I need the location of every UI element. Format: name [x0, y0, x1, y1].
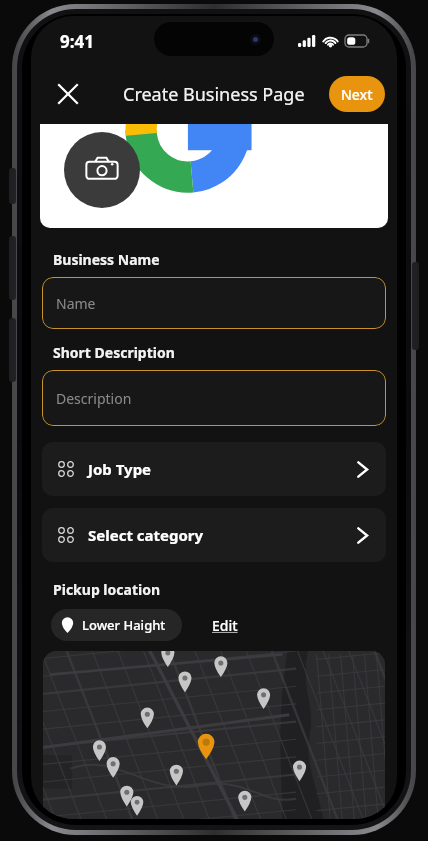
staticText: Business Name: [53, 250, 160, 269]
staticText: 9:41: [60, 30, 94, 53]
staticText: Description: [56, 389, 132, 408]
staticText: Create Business Page: [123, 82, 305, 107]
button[interactable]: Close: [46, 72, 90, 116]
button[interactable]: Edit: [208, 612, 242, 639]
button[interactable]: Job Type: [42, 442, 386, 496]
staticText: Next: [341, 85, 373, 104]
staticText: Pickup location: [53, 580, 161, 599]
button[interactable]: Next: [329, 76, 385, 112]
button[interactable]: Name: [42, 277, 386, 329]
staticText: Edit: [212, 616, 238, 635]
staticText: Lower Haight: [82, 616, 166, 634]
button[interactable]: Add photo: [64, 132, 140, 208]
staticText: Short Description: [53, 343, 175, 362]
button[interactable]: Lower Haight: [51, 609, 182, 641]
button[interactable]: Select category: [42, 508, 386, 562]
staticText: Job Type: [88, 459, 152, 479]
staticText: Name: [56, 294, 96, 313]
button[interactable]: Description: [42, 370, 386, 426]
staticText: Select category: [88, 525, 204, 545]
button[interactable]: Map of pickup location: [43, 651, 385, 819]
button[interactable]: Add photo: [40, 124, 388, 228]
